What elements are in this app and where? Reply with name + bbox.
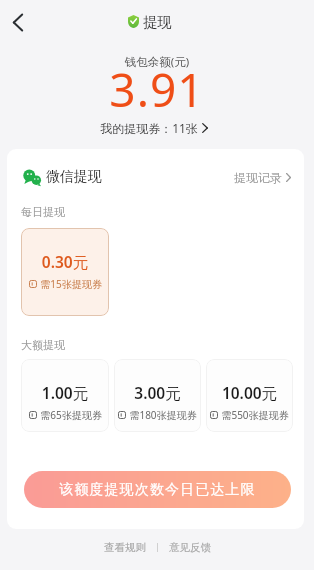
staticText: 每日提现: [21, 205, 65, 219]
staticText: 3.91: [0, 58, 314, 121]
button[interactable]: 该额度提现次数今日已达上限: [24, 471, 291, 508]
button[interactable]: Back: [1, 2, 35, 42]
staticText: 微信提现: [46, 168, 102, 186]
button[interactable]: 提现记录: [234, 170, 291, 185]
button[interactable]: 3.00元: [114, 359, 201, 432]
staticText: 我的提现券：11张: [100, 120, 198, 136]
staticText: 大额提现: [21, 338, 65, 352]
button[interactable]: 1.00元: [21, 359, 109, 432]
staticText: 3.00元: [114, 382, 201, 403]
button[interactable]: 10.00元: [206, 359, 293, 432]
staticText: 该额度提现次数今日已达上限: [59, 481, 256, 499]
staticText: 需180张提现券: [129, 408, 197, 422]
button[interactable]: 我的提现券：11张: [0, 120, 311, 136]
staticText: 0.30元: [21, 251, 109, 272]
button[interactable]: 0.30元: [21, 228, 109, 316]
staticText: 10.00元: [206, 382, 293, 403]
staticText: 需15张提现券: [40, 277, 102, 291]
staticText: 钱包余额(元): [0, 54, 314, 70]
staticText: 需65张提现券: [40, 408, 102, 422]
staticText: 提现记录: [234, 170, 282, 185]
staticText: 需550张提现券: [221, 408, 289, 422]
staticText: 提现: [143, 13, 172, 31]
button[interactable]: 意见反馈: [169, 541, 211, 554]
button[interactable]: 查看规则: [104, 541, 146, 554]
staticText: 1.00元: [21, 382, 109, 403]
